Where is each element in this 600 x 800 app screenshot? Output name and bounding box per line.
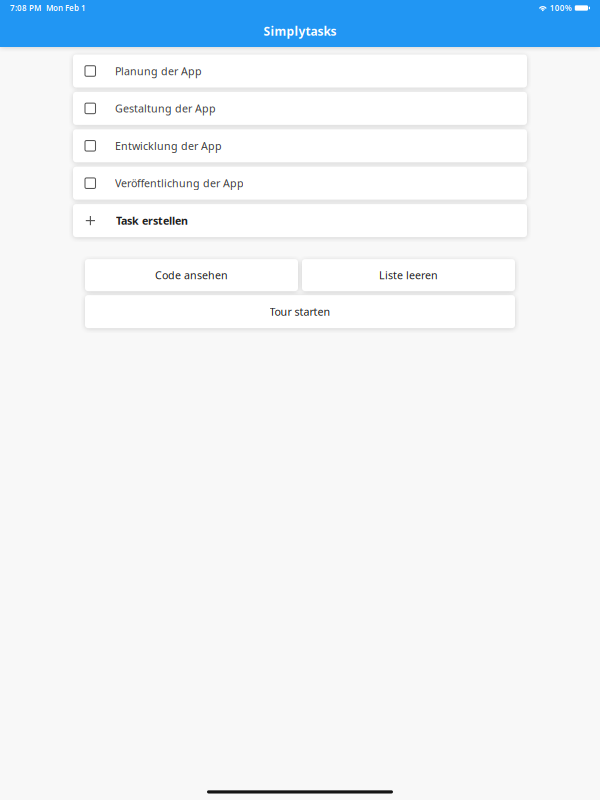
button[interactable]: Task erstellen [73, 204, 527, 237]
staticText: Liste leeren [379, 268, 438, 282]
staticText: Tour starten [269, 304, 330, 319]
staticText: Simplytasks [263, 23, 336, 39]
button[interactable]: Code ansehen [85, 259, 298, 291]
button[interactable]: Entwicklung der App [73, 129, 527, 162]
staticText: 7:08 PM [10, 3, 41, 13]
button[interactable]: Veröffentlichung der App [73, 167, 527, 200]
staticText: Gestaltung der App [115, 101, 216, 115]
button[interactable]: Planung der App [73, 54, 527, 87]
staticText: Task erstellen [116, 213, 188, 228]
staticText: Code ansehen [155, 268, 228, 282]
button[interactable]: Liste leeren [302, 259, 515, 291]
staticText: Entwicklung der App [115, 139, 222, 153]
staticText: Planung der App [115, 64, 202, 78]
staticText: Mon Feb 1 [46, 3, 86, 13]
button[interactable]: Gestaltung der App [73, 92, 527, 125]
button[interactable]: Tour starten [85, 295, 515, 328]
staticText: 100% [550, 3, 572, 13]
staticText: Veröffentlichung der App [115, 176, 244, 190]
